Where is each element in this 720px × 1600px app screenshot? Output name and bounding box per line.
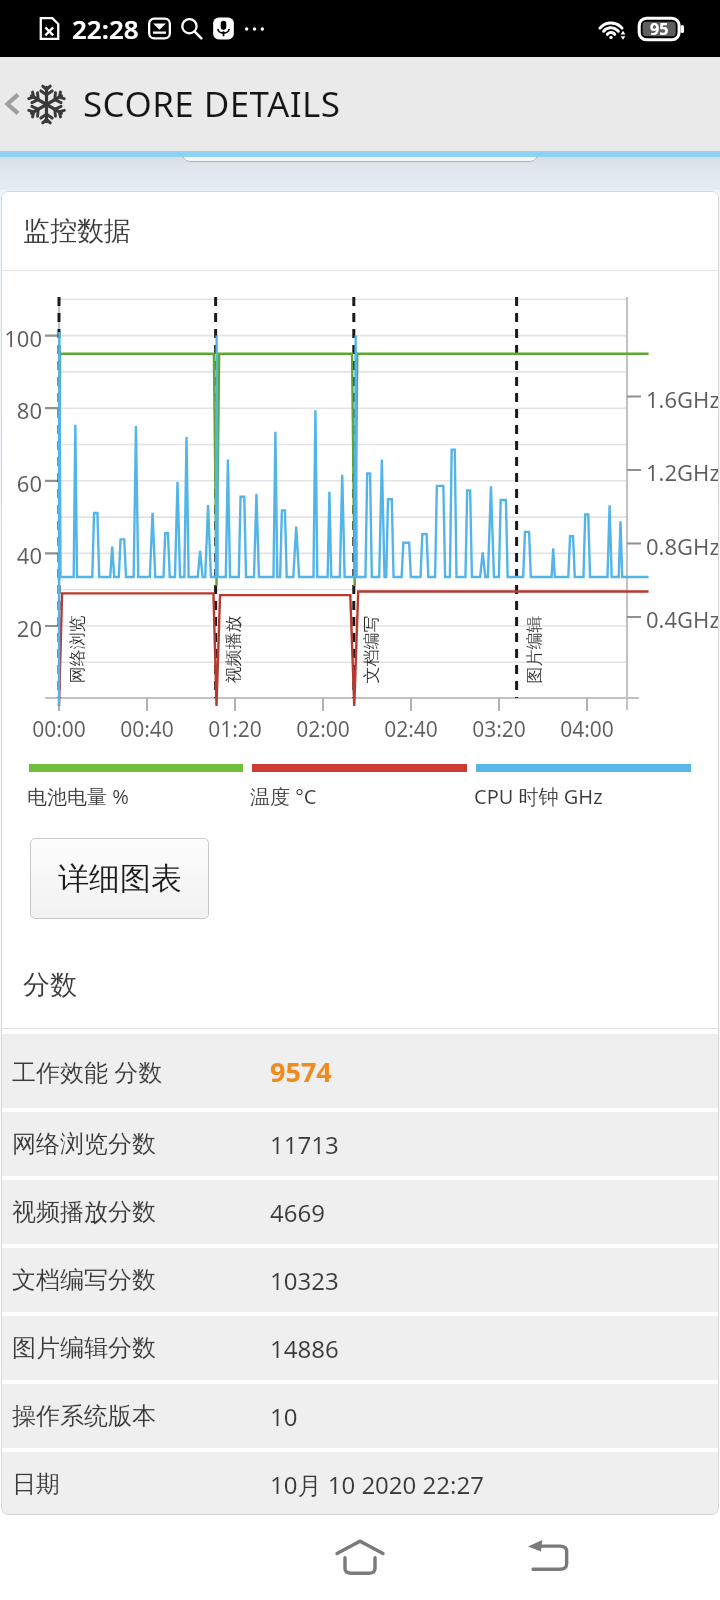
button[interactable]: 视频播放分数: [1, 1180, 719, 1244]
staticText: 00:40: [109, 715, 185, 744]
staticText: 02:00: [285, 715, 361, 744]
staticText: 11713: [270, 1128, 339, 1161]
staticText: 14886: [270, 1332, 339, 1365]
staticText: 分数: [23, 968, 77, 1002]
staticText: 图片编辑: [523, 615, 542, 683]
staticText: SCORE DETAILS: [83, 80, 341, 128]
staticText: 1.2GHz: [646, 457, 719, 487]
button[interactable]: Back: [0, 57, 25, 151]
staticText: 视频播放: [222, 615, 241, 683]
staticText: CPU 时钟 GHz: [474, 783, 689, 810]
staticText: 监控数据: [23, 214, 131, 248]
staticText: 文档编写分数: [12, 1265, 270, 1295]
button[interactable]: 文档编写分数: [1, 1248, 719, 1312]
button[interactable]: Back: [510, 1525, 588, 1589]
button[interactable]: Home: [321, 1525, 399, 1589]
staticText: 操作系统版本: [12, 1401, 270, 1431]
button[interactable]: 工作效能 分数: [1, 1034, 719, 1108]
staticText: 工作效能 分数: [12, 1055, 270, 1088]
staticText: 网络浏览分数: [12, 1129, 270, 1159]
staticText: 00:00: [21, 715, 97, 744]
staticText: 4669: [270, 1196, 325, 1229]
staticText: 100: [1, 323, 42, 353]
staticText: 10323: [270, 1264, 339, 1297]
button[interactable]: 操作系统版本: [1, 1384, 719, 1448]
button[interactable]: 图片编辑分数: [1, 1316, 719, 1380]
staticText: 10: [270, 1400, 298, 1433]
staticText: 温度 °C: [250, 783, 465, 810]
staticText: 20: [1, 613, 42, 643]
staticText: 60: [1, 468, 42, 498]
staticText: 0.4GHz: [646, 604, 719, 634]
staticText: 文档编写: [360, 615, 379, 683]
staticText: 网络浏览: [66, 615, 85, 683]
staticText: 22:28: [72, 11, 139, 46]
staticText: 图片编辑分数: [12, 1333, 270, 1363]
staticText: 日期: [12, 1469, 270, 1499]
button[interactable]: 详细图表: [30, 838, 209, 919]
staticText: 40: [1, 540, 42, 570]
staticText: 10月 10 2020 22:27: [270, 1468, 484, 1501]
button[interactable]: 日期: [1, 1452, 719, 1515]
staticText: 95: [650, 18, 669, 40]
staticText: 04:00: [549, 715, 625, 744]
staticText: 02:40: [373, 715, 449, 744]
staticText: 9574: [270, 1053, 332, 1090]
staticText: 0.8GHz: [646, 531, 719, 561]
staticText: 详细图表: [58, 859, 182, 898]
button[interactable]: 网络浏览分数: [1, 1112, 719, 1176]
staticText: 01:20: [197, 715, 273, 744]
staticText: 1.6GHz: [646, 384, 719, 414]
staticText: 视频播放分数: [12, 1197, 270, 1227]
staticText: 80: [1, 395, 42, 425]
staticText: 03:20: [461, 715, 537, 744]
staticText: 电池电量 %: [27, 783, 241, 810]
